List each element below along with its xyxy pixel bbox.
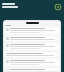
button[interactable] (5, 27, 59, 34)
button[interactable] (5, 36, 59, 41)
button[interactable] (5, 43, 59, 50)
button[interactable] (5, 68, 59, 71)
button[interactable] (5, 59, 59, 66)
button[interactable] (5, 52, 59, 57)
button[interactable]: Brand mark (55, 4, 61, 10)
